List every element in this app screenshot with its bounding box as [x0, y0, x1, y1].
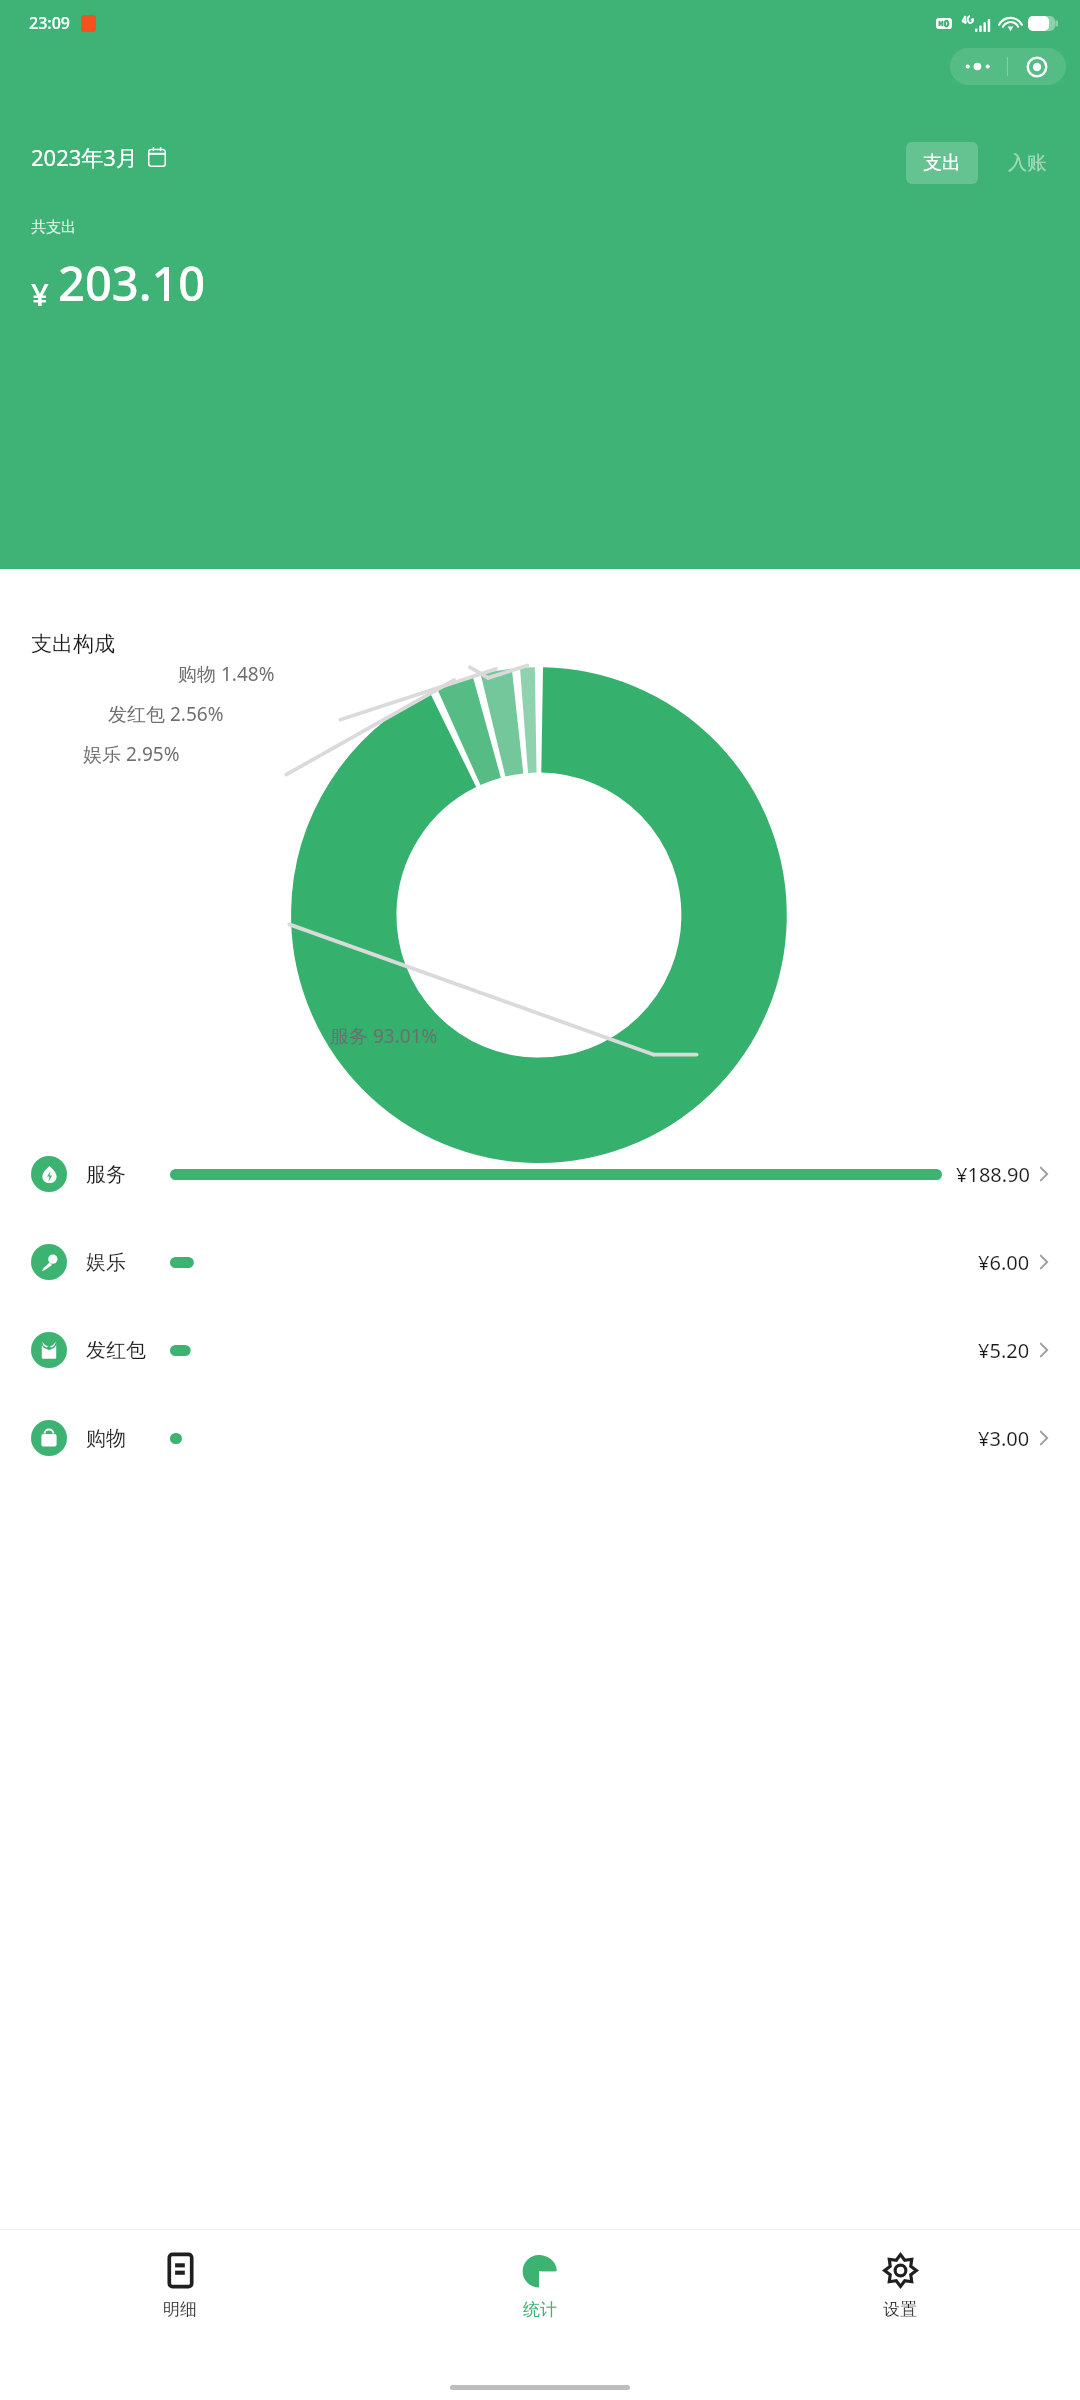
button[interactable]: 购物	[0, 1394, 1080, 1482]
button[interactable]: 发红包	[0, 1306, 1080, 1394]
staticText: 支出构成	[31, 631, 115, 657]
staticText: 发红包	[86, 1338, 170, 1363]
button[interactable]: 2023年3月	[31, 142, 166, 172]
button[interactable]: More	[950, 48, 1007, 85]
staticText: 共支出	[31, 218, 76, 237]
staticText: 娱乐	[86, 1250, 170, 1275]
staticText: 入账	[1008, 151, 1046, 175]
staticText: 娱乐 2.95%	[83, 741, 180, 767]
staticText: ¥5.20	[978, 1337, 1030, 1364]
button[interactable]: 统计	[360, 2230, 720, 2375]
button[interactable]: 支出	[906, 142, 978, 184]
button[interactable]: 明细	[0, 2230, 360, 2375]
button[interactable]: 娱乐	[0, 1218, 1080, 1306]
staticText: 购物 1.48%	[178, 661, 275, 687]
staticText: ¥188.90	[956, 1161, 1030, 1188]
staticText: 203.10	[58, 251, 206, 315]
staticText: 23:09	[29, 12, 70, 34]
button[interactable]: 服务	[0, 1130, 1080, 1218]
staticText: 明细	[163, 2299, 197, 2320]
staticText: 统计	[523, 2299, 557, 2320]
staticText: 设置	[883, 2299, 917, 2320]
staticText: ¥6.00	[978, 1249, 1030, 1276]
staticText: 发红包 2.56%	[108, 701, 224, 727]
staticText: ¥3.00	[978, 1425, 1030, 1452]
staticText: 服务	[86, 1162, 170, 1187]
staticText: 服务 93.01%	[330, 1023, 438, 1049]
staticText: 支出	[923, 151, 961, 175]
staticText: 购物	[86, 1426, 170, 1451]
button[interactable]: Close	[1008, 48, 1066, 85]
staticText: 2023年3月	[31, 142, 138, 172]
staticText: ¥	[31, 273, 49, 315]
button[interactable]: 入账	[998, 142, 1056, 184]
button[interactable]: 设置	[720, 2230, 1080, 2375]
other: Mini program menu	[950, 48, 1066, 85]
